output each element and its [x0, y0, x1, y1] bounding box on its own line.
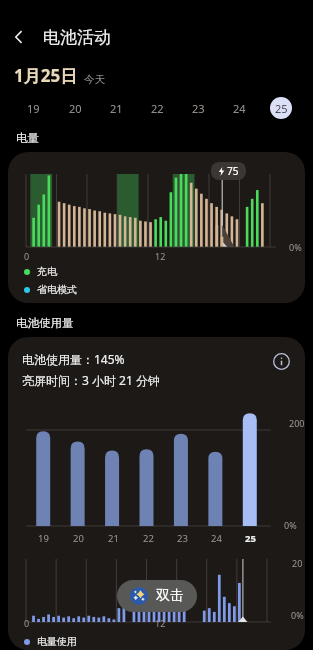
staticText: 充电 [37, 265, 57, 278]
staticText: 19 [38, 532, 49, 545]
staticText: 0 [24, 250, 30, 262]
staticText: 12 [155, 250, 166, 262]
button[interactable]: 20 [54, 95, 96, 121]
staticText: 0% [291, 609, 304, 621]
button[interactable]: 21 [96, 95, 137, 121]
staticText: 25 [275, 101, 288, 116]
staticText: 21 [110, 101, 123, 116]
staticText: 0% [284, 519, 297, 531]
staticText: 双击 [156, 587, 184, 605]
staticText: 0 [24, 617, 30, 629]
button[interactable]: 双击 [117, 580, 197, 612]
staticText: 12 [155, 617, 166, 629]
button[interactable]: 22 [137, 95, 178, 121]
staticText: 电量使用 [37, 635, 77, 648]
button[interactable]: Info [267, 347, 295, 375]
button[interactable]: 24 [219, 95, 260, 121]
staticText: 电池使用量 [16, 316, 74, 330]
button[interactable]: 75 [8, 152, 305, 303]
staticText: 23 [177, 532, 188, 545]
button[interactable]: 25 [260, 95, 301, 121]
staticText: 20 [73, 532, 84, 545]
staticText: 20 [69, 101, 82, 116]
staticText: 电池使用量：145% [22, 351, 125, 367]
button[interactable]: Back [0, 18, 38, 56]
staticText: 电量 [16, 131, 39, 145]
staticText: 亮屏时间：3 小时 21 分钟 [22, 372, 160, 388]
staticText: 省电模式 [37, 283, 77, 296]
staticText: 电池活动 [43, 27, 111, 48]
staticText: 75 [227, 164, 239, 178]
staticText: 24 [233, 101, 246, 116]
staticText: 200 [289, 417, 305, 429]
staticText: 今天 [84, 73, 105, 86]
staticText: 22 [151, 101, 164, 116]
staticText: 21 [108, 532, 119, 545]
staticText: 24 [211, 532, 222, 545]
staticText: 0% [289, 241, 302, 253]
staticText: 23 [192, 101, 205, 116]
staticText: 22 [143, 532, 154, 545]
button[interactable]: 19 [12, 95, 54, 121]
button[interactable]: 23 [178, 95, 219, 121]
staticText: 25 [245, 532, 256, 545]
staticText: 19 [27, 101, 40, 116]
staticText: 1月25日 [14, 64, 78, 87]
staticText: 20 [292, 557, 303, 569]
